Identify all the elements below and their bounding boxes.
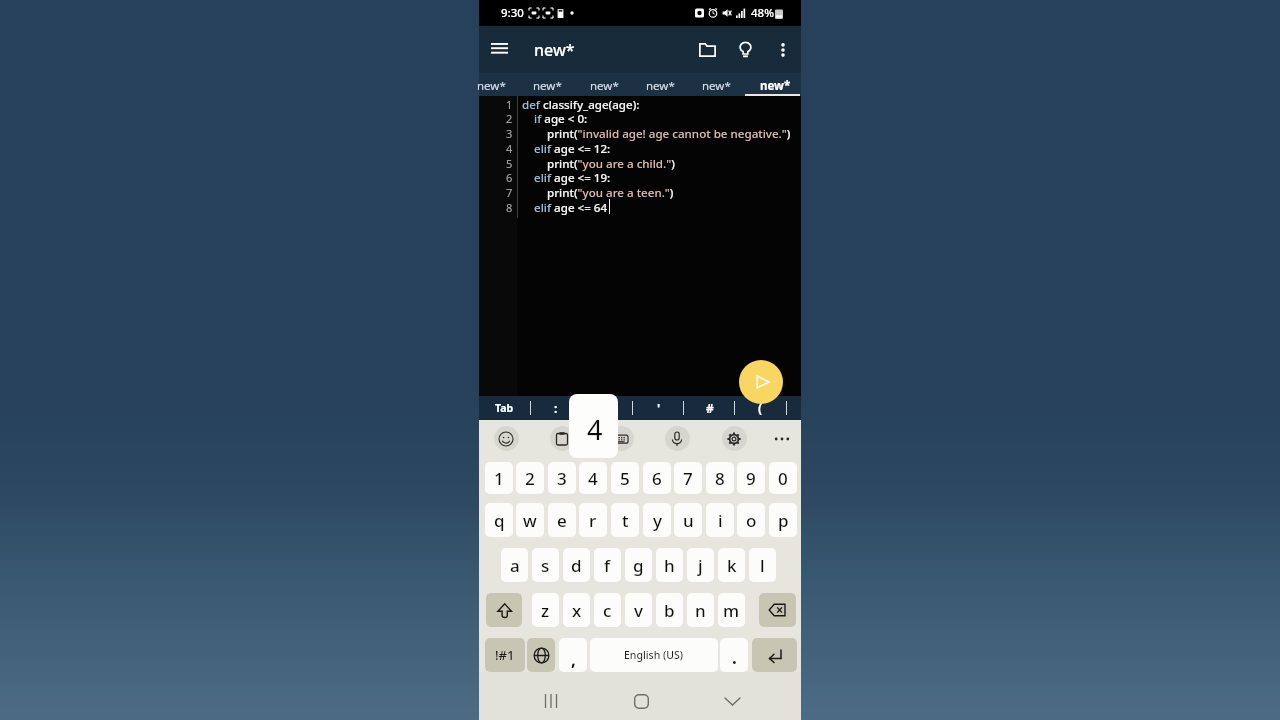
button[interactable]: c [594, 593, 621, 627]
button[interactable]: : [530, 396, 581, 420]
staticText: 3 [557, 467, 567, 490]
button[interactable]: 2 [516, 462, 544, 494]
button[interactable]: 8 [706, 462, 734, 494]
button[interactable]: new* [578, 73, 630, 96]
staticText: s [541, 554, 550, 577]
button[interactable]: 5 [611, 462, 639, 494]
button[interactable]: new* [465, 73, 517, 96]
button[interactable]: Enter [752, 638, 797, 672]
button[interactable]: Navigation menu [481, 26, 518, 73]
staticText: . [732, 646, 737, 669]
button[interactable]: new* [749, 73, 801, 96]
button[interactable]: 0 [769, 462, 797, 494]
button[interactable]: a [501, 548, 528, 582]
button[interactable]: z [532, 593, 559, 627]
button[interactable]: w [516, 503, 544, 537]
button[interactable]: Clipboard [546, 420, 578, 457]
button[interactable]: new* [690, 73, 742, 96]
staticText: i [718, 509, 723, 532]
button[interactable]: 6 [643, 462, 671, 494]
staticText: 5 [506, 156, 513, 171]
staticText: Tab [495, 401, 514, 415]
button[interactable]: ( [735, 396, 786, 420]
button[interactable]: q [485, 503, 513, 537]
button[interactable]: k [718, 548, 745, 582]
staticText: 5 [620, 467, 630, 490]
button[interactable]: r [579, 503, 607, 537]
staticText: : [554, 400, 558, 416]
button[interactable]: new* [521, 73, 573, 96]
button[interactable]: More options [765, 26, 801, 73]
button[interactable]: English (US) [590, 638, 718, 672]
button[interactable]: | [581, 396, 632, 420]
button[interactable]: t [611, 503, 639, 537]
button[interactable]: More options [766, 420, 798, 457]
button[interactable]: , [559, 638, 587, 672]
button[interactable]: Tab [479, 396, 530, 420]
staticText: new* [533, 78, 562, 94]
button[interactable]: Switch language [527, 638, 555, 672]
button[interactable]: p [769, 503, 797, 537]
staticText: j [698, 554, 703, 577]
button[interactable]: o [737, 503, 765, 537]
button[interactable]: Tips [726, 26, 764, 73]
staticText: w [523, 509, 537, 532]
staticText: m [723, 599, 740, 622]
button[interactable]: Backspace [759, 593, 796, 627]
staticText: 9:30 [501, 5, 524, 21]
button[interactable]: n [687, 593, 714, 627]
button[interactable]: 1 [485, 462, 513, 494]
button[interactable]: s [532, 548, 559, 582]
button[interactable]: g [625, 548, 652, 582]
button[interactable]: v [625, 593, 652, 627]
staticText: new* [760, 78, 791, 94]
button[interactable]: d [563, 548, 590, 582]
staticText: 1 [494, 467, 504, 490]
button[interactable]: Run [739, 360, 783, 404]
staticText: new* [702, 78, 731, 94]
button[interactable]: 7 [674, 462, 702, 494]
button[interactable]: Voice input [661, 420, 693, 457]
button[interactable]: b [656, 593, 683, 627]
button[interactable]: j [687, 548, 714, 582]
button[interactable]: e [548, 503, 576, 537]
staticText: 2 [525, 467, 535, 490]
staticText: p [778, 509, 789, 532]
button[interactable]: Keyboard modes [605, 420, 637, 457]
button[interactable]: y [643, 503, 671, 537]
button[interactable]: Recent apps [527, 677, 575, 720]
button[interactable]: m [718, 593, 745, 627]
staticText: d [571, 554, 582, 577]
button[interactable]: l [749, 548, 776, 582]
staticText: l [760, 554, 765, 577]
button[interactable]: h [656, 548, 683, 582]
button[interactable]: # [684, 396, 735, 420]
button[interactable]: Hide keyboard [708, 677, 756, 720]
button[interactable]: 4 [579, 462, 607, 494]
button[interactable]: . [720, 638, 748, 672]
button[interactable]: new* [634, 73, 686, 96]
staticText: 8 [715, 467, 725, 490]
button[interactable]: Home [617, 677, 665, 720]
staticText: q [494, 509, 505, 532]
staticText: elif age <= 64 [534, 200, 608, 215]
button[interactable]: 3 [548, 462, 576, 494]
button[interactable]: Settings [718, 420, 750, 457]
staticText: e [557, 509, 567, 532]
staticText: new* [646, 78, 675, 94]
button[interactable]: i [706, 503, 734, 537]
button[interactable]: f [594, 548, 621, 582]
button[interactable]: Emoji [490, 420, 522, 457]
button[interactable]: ' [633, 396, 684, 420]
button[interactable]: !#1 [485, 638, 525, 672]
staticText: 9 [746, 467, 756, 490]
staticText: if age < 0: [534, 111, 588, 126]
staticText: 4 [587, 411, 603, 448]
button[interactable]: x [563, 593, 590, 627]
button[interactable]: 9 [737, 462, 765, 494]
button[interactable]: u [674, 503, 702, 537]
staticText: new* [534, 39, 575, 61]
staticText: print("you are a child.") [547, 156, 675, 171]
button[interactable]: Open file [688, 26, 726, 73]
button[interactable]: Shift [486, 593, 522, 627]
